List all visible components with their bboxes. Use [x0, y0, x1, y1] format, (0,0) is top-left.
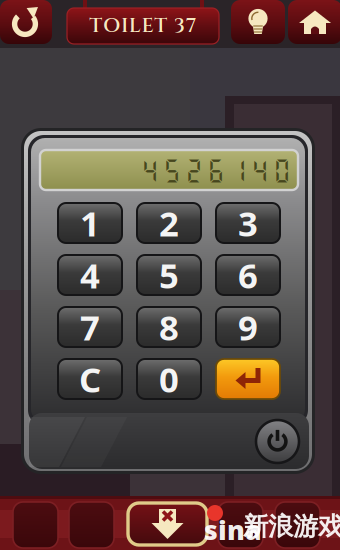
staticText: 4	[80, 252, 100, 298]
staticText: C	[79, 356, 101, 402]
button[interactable]: 7	[58, 307, 122, 347]
button[interactable]: 4	[58, 255, 122, 295]
button[interactable]: Home	[288, 0, 340, 44]
button[interactable]: 5	[137, 255, 201, 295]
button[interactable]: 3	[216, 203, 280, 243]
button[interactable]: 6	[216, 255, 280, 295]
button[interactable]: Item slot 3	[218, 502, 263, 548]
button[interactable]: Item slot 4	[275, 502, 320, 548]
staticText: 2	[159, 200, 179, 246]
staticText: 5	[159, 252, 179, 298]
staticText: 新浪游戏	[243, 511, 340, 542]
staticText: 6	[238, 252, 258, 298]
staticText: 8	[159, 304, 179, 350]
button[interactable]: Item slot 1	[13, 502, 58, 548]
staticText: 0	[159, 356, 179, 402]
button[interactable]: Item slot 2	[69, 502, 114, 548]
button[interactable]: Power	[256, 420, 299, 463]
staticText: 3	[238, 200, 258, 246]
button[interactable]: 8	[137, 307, 201, 347]
staticText: 4526140	[141, 155, 291, 185]
staticText: 9	[238, 304, 258, 350]
button[interactable]: 2	[137, 203, 201, 243]
button[interactable]: C	[58, 359, 122, 399]
button[interactable]: 1	[58, 203, 122, 243]
staticText: sina	[204, 512, 262, 547]
button[interactable]: Drop item	[128, 503, 207, 545]
button[interactable]: 9	[216, 307, 280, 347]
button[interactable]: 0	[137, 359, 201, 399]
button[interactable]: Enter	[216, 359, 280, 399]
staticText: 1	[80, 200, 100, 246]
staticText: 7	[80, 304, 100, 350]
button[interactable]: Hint	[231, 0, 285, 44]
staticText: TOILET 37	[89, 12, 197, 39]
button[interactable]: Restart	[0, 0, 52, 44]
